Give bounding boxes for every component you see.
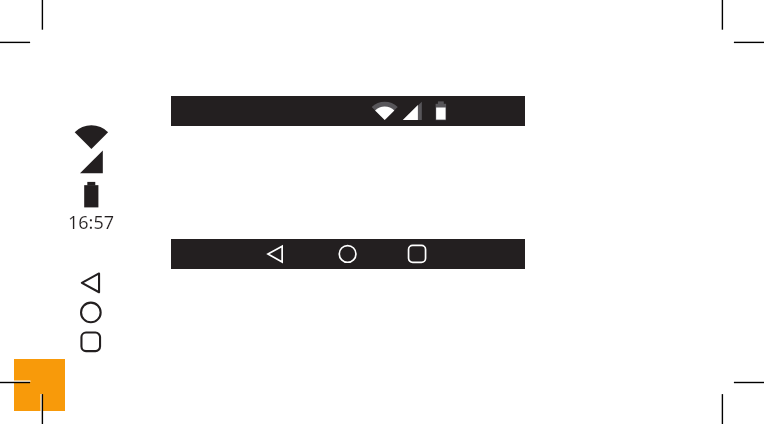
- button[interactable]: Accent colour swatch: [14, 359, 65, 411]
- button[interactable]: Status icon artwork: [68, 120, 116, 212]
- button[interactable]: Status bar: [171, 96, 525, 126]
- button[interactable]: Navigation icon artwork: [68, 268, 116, 354]
- button[interactable]: Home: [328, 239, 368, 269]
- button[interactable]: Back: [255, 239, 295, 269]
- staticText: 16:57: [68, 210, 115, 235]
- button[interactable]: Recent apps: [398, 239, 438, 269]
